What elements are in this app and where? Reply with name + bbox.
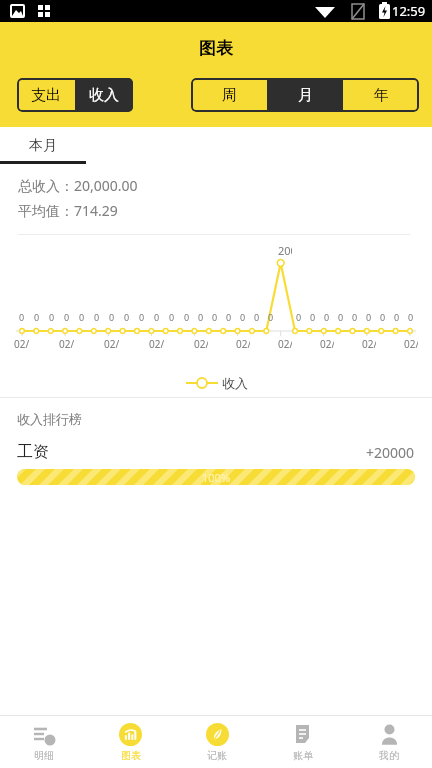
staticText: 0: [352, 311, 358, 323]
staticText: 图表: [199, 38, 233, 59]
button[interactable]: 支出: [17, 78, 75, 112]
staticText: 0: [240, 311, 246, 323]
staticText: 0: [154, 311, 160, 323]
staticText: 0: [254, 311, 260, 323]
staticText: 本月: [29, 137, 57, 155]
staticText: 12:59: [392, 2, 426, 20]
staticText: 0: [408, 311, 414, 323]
staticText: 02/28: [404, 337, 418, 351]
staticText: 02/25: [362, 337, 376, 351]
staticText: 图表: [121, 749, 141, 762]
staticText: 0: [49, 311, 55, 323]
button[interactable]: 记账: [174, 716, 260, 768]
staticText: 明细: [34, 749, 54, 762]
button[interactable]: 图表: [87, 716, 174, 768]
staticText: 02/07: [104, 337, 119, 351]
button[interactable]: 明细: [0, 716, 87, 768]
staticText: 月: [298, 86, 313, 105]
button[interactable]: 我的: [346, 716, 432, 768]
staticText: 0: [310, 311, 316, 323]
button[interactable]: 本月: [0, 127, 86, 164]
staticText: 0: [19, 311, 25, 323]
staticText: 0: [324, 311, 330, 323]
staticText: 0: [109, 311, 115, 323]
staticText: 0: [268, 311, 274, 323]
staticText: 02/01: [14, 337, 29, 351]
staticText: 0: [198, 311, 204, 323]
staticText: 周: [222, 86, 237, 105]
staticText: 0: [366, 311, 372, 323]
staticText: 总收入：20,000.00: [18, 176, 138, 195]
staticText: 0: [34, 311, 40, 323]
staticText: 02/16: [236, 337, 250, 351]
button[interactable]: 周: [191, 78, 267, 112]
staticText: 0: [139, 311, 145, 323]
button[interactable]: 收入: [75, 78, 133, 112]
staticText: 0: [124, 311, 130, 323]
staticText: 0: [184, 311, 190, 323]
staticText: 02/19: [278, 337, 292, 351]
staticText: 100%: [202, 470, 231, 485]
staticText: 0: [394, 311, 400, 323]
staticText: 02/22: [320, 337, 334, 351]
staticText: 20000: [278, 243, 292, 258]
staticText: 我的: [379, 749, 399, 762]
staticText: 02/10: [149, 337, 164, 351]
staticText: 平均值：714.29: [18, 201, 118, 220]
staticText: 0: [212, 311, 218, 323]
staticText: 02/04: [59, 337, 74, 351]
staticText: 账单: [293, 749, 313, 762]
staticText: +20000: [366, 443, 415, 462]
staticText: 0: [169, 311, 175, 323]
button[interactable]: 年: [343, 78, 419, 112]
staticText: 02/13: [194, 337, 208, 351]
staticText: 收入: [222, 375, 248, 391]
staticText: 0: [79, 311, 85, 323]
staticText: 工资: [17, 442, 49, 462]
staticText: 记账: [207, 749, 227, 762]
staticText: 年: [374, 86, 389, 105]
staticText: 收入排行榜: [17, 411, 82, 427]
staticText: 0: [64, 311, 70, 323]
button[interactable]: 月: [267, 78, 343, 112]
staticText: 收入: [89, 86, 119, 105]
staticText: 0: [226, 311, 232, 323]
button[interactable]: 账单: [260, 716, 346, 768]
staticText: 0: [338, 311, 344, 323]
staticText: 0: [380, 311, 386, 323]
staticText: 0: [94, 311, 100, 323]
staticText: 支出: [31, 86, 61, 105]
staticText: 0: [296, 311, 302, 323]
